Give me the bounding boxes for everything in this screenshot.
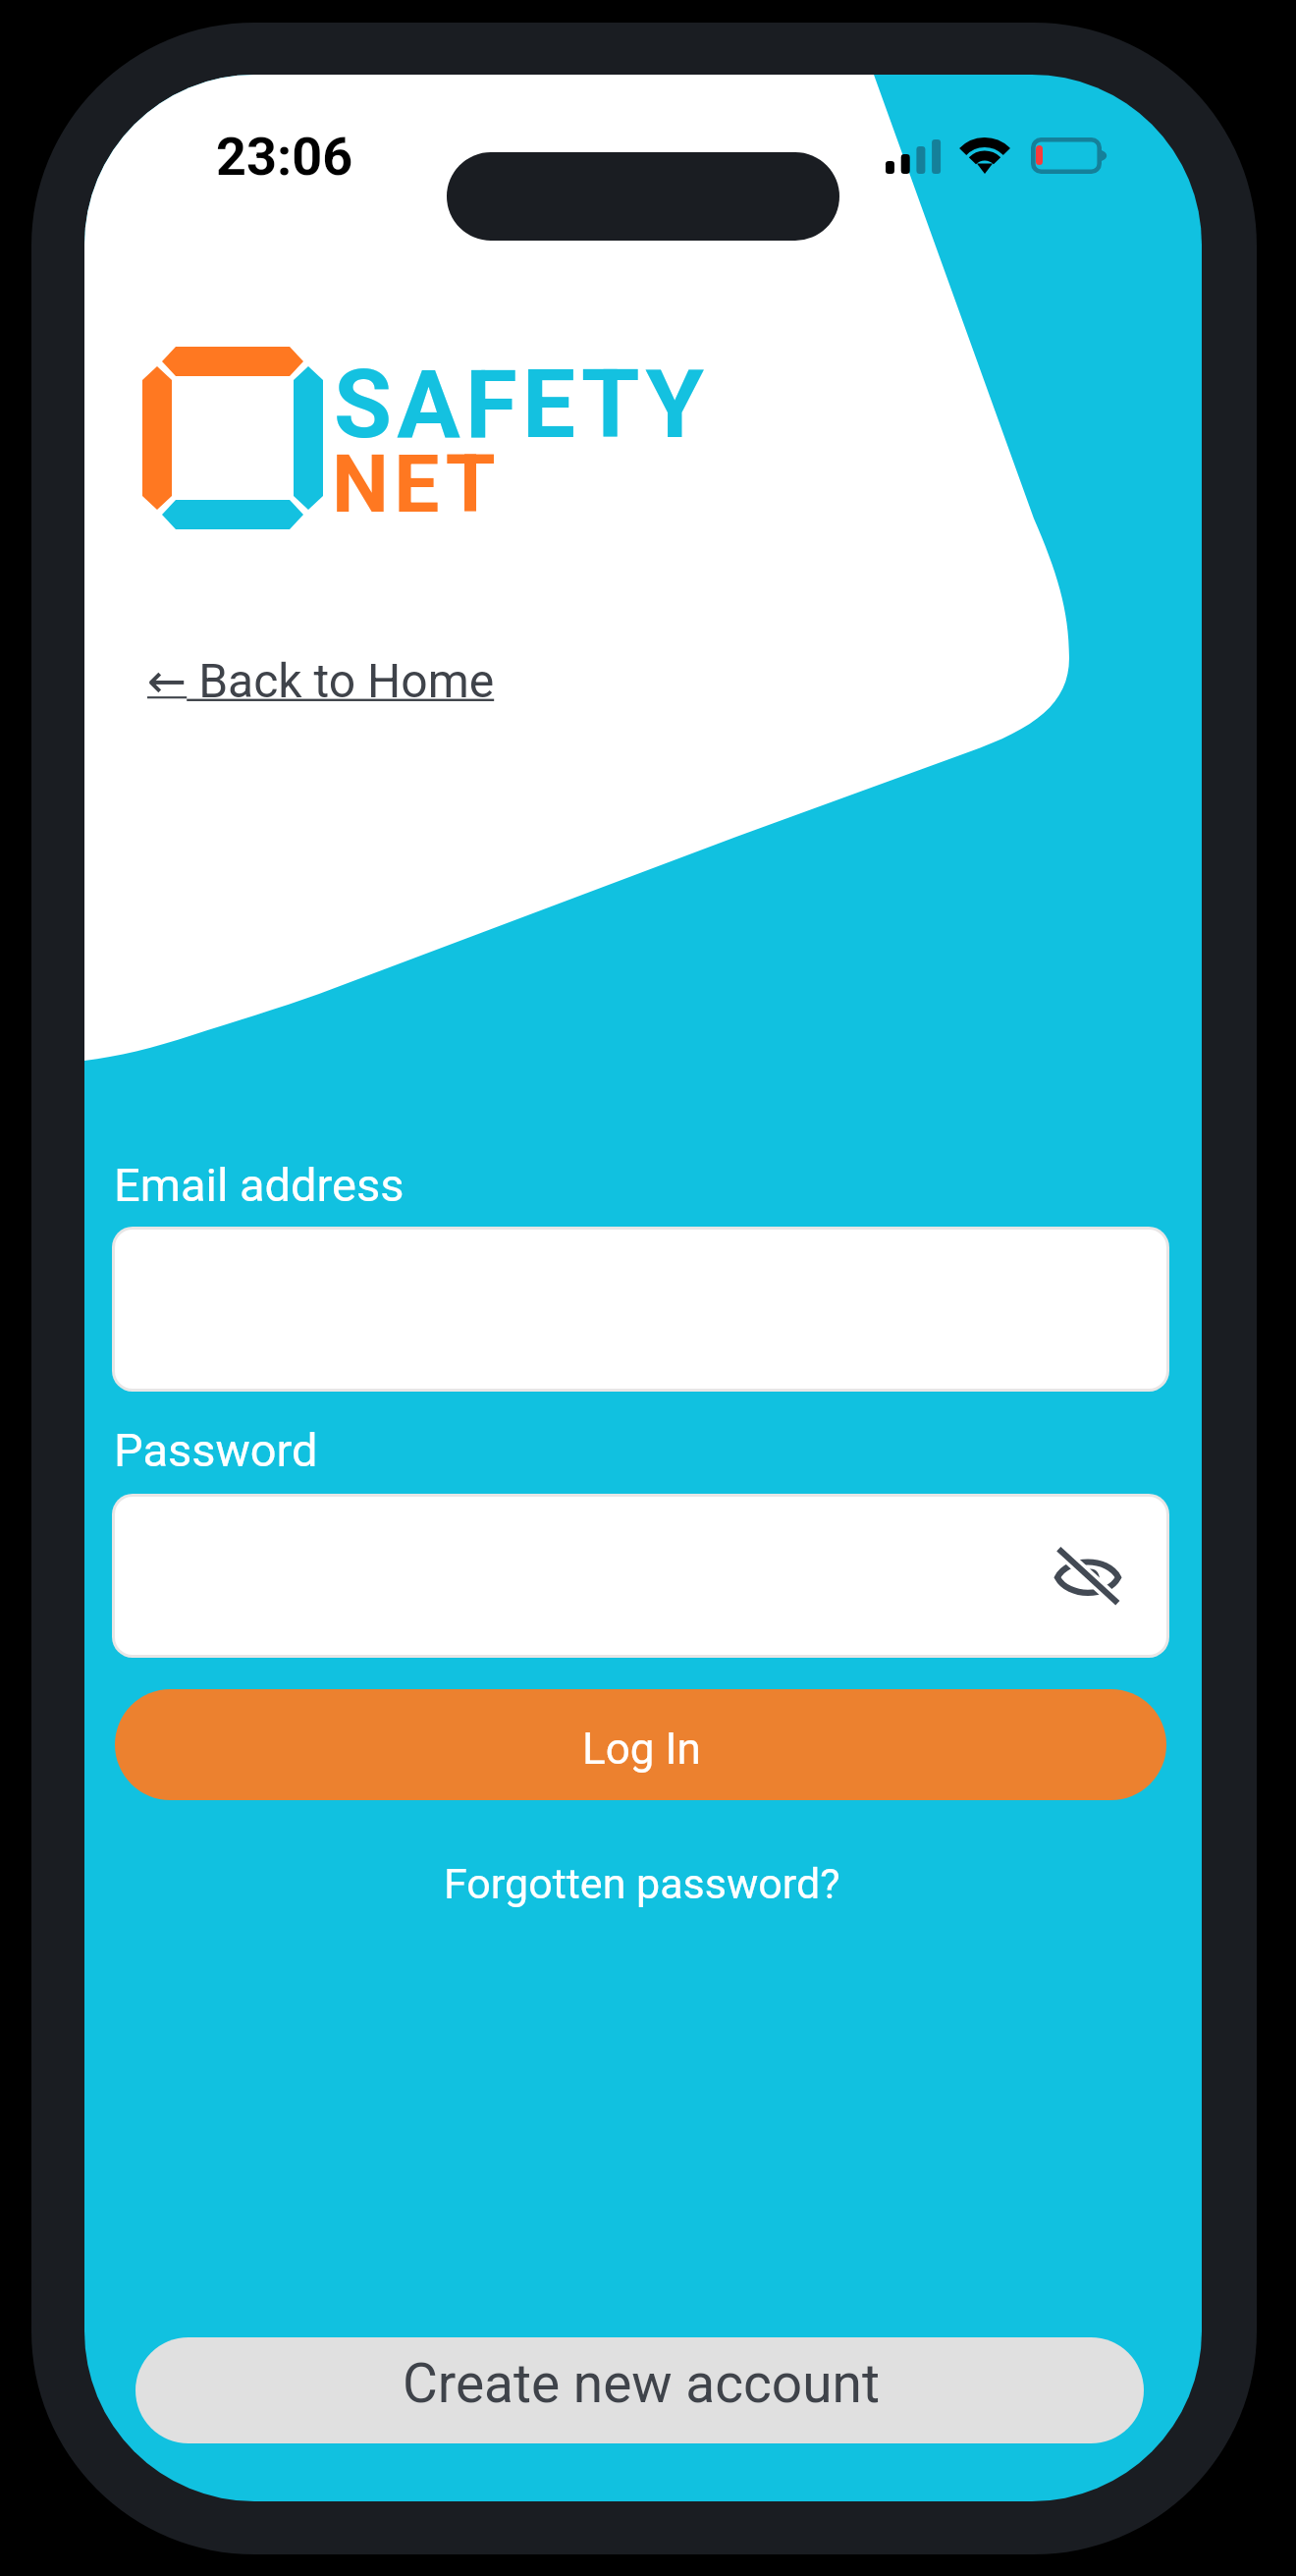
button[interactable]: Show password xyxy=(1047,1535,1129,1617)
staticText: SAFETY xyxy=(334,350,710,461)
button[interactable]: ← Back to Home xyxy=(142,644,498,709)
staticText: NET xyxy=(332,437,502,531)
button[interactable] xyxy=(115,1230,1166,1389)
staticText: Password xyxy=(114,1423,318,1477)
button[interactable]: Show password xyxy=(115,1497,1166,1655)
button[interactable]: Create new account xyxy=(135,2337,1144,2443)
staticText: ← Back to Home xyxy=(147,653,495,708)
staticText: Log In xyxy=(582,1724,701,1775)
staticText: 23:06 xyxy=(216,126,353,188)
button[interactable]: Forgotten password? xyxy=(432,1849,854,1922)
staticText: Create new account xyxy=(403,2352,880,2415)
button[interactable]: Log In xyxy=(115,1689,1166,1800)
staticText: Forgotten password? xyxy=(444,1859,840,1908)
staticText: Email address xyxy=(114,1158,405,1212)
